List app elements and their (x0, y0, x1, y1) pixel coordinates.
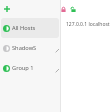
staticText: Group 1 (12, 64, 34, 72)
staticText: All Hosts (12, 24, 36, 32)
button[interactable]: Edit ShadowS (50, 38, 59, 58)
button[interactable]: Add host group (0, 0, 13, 13)
staticText: 127.0.0.1 localhost (66, 21, 110, 28)
button[interactable]: Editable (67, 0, 80, 13)
staticText: ShadowS (12, 44, 37, 52)
button[interactable]: Read only (57, 0, 70, 13)
button[interactable]: ShadowS (1, 38, 59, 58)
button[interactable]: Edit Group 1 (50, 58, 59, 78)
button[interactable]: All Hosts (1, 18, 59, 38)
button[interactable]: Group 1 (1, 58, 59, 78)
